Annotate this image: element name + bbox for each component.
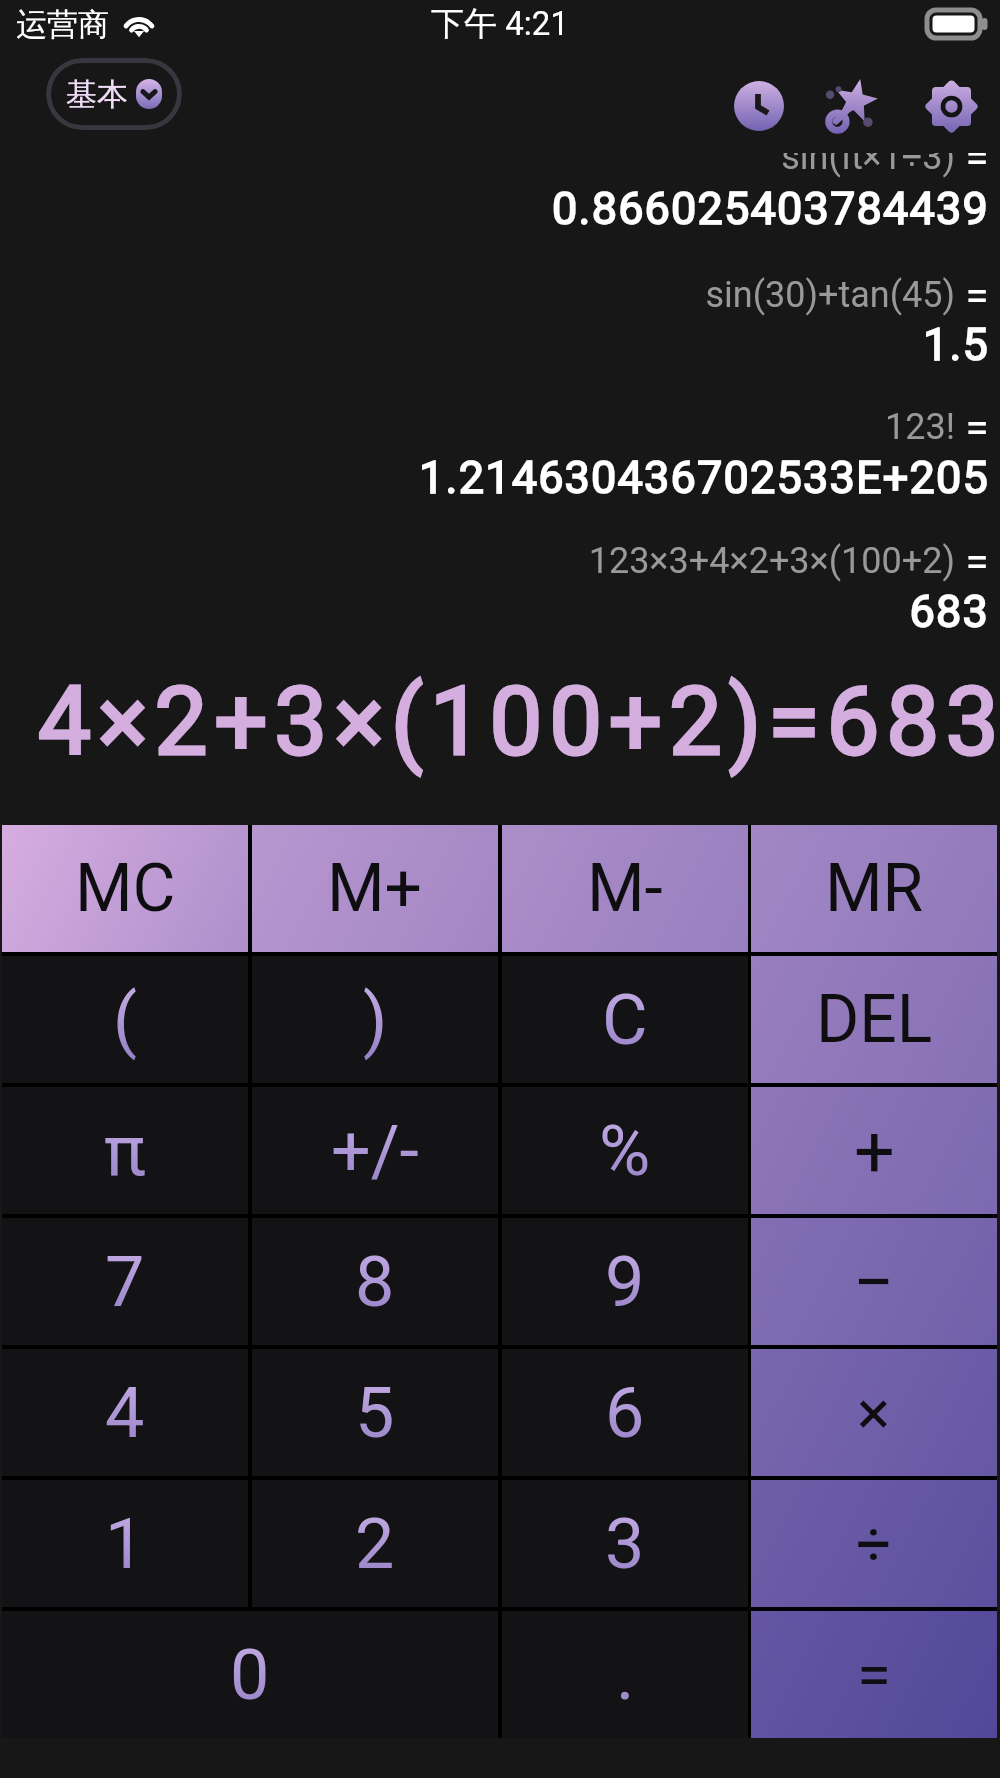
staticText: M+ <box>327 850 423 927</box>
staticText: 运营商 <box>16 5 109 44</box>
staticText: . <box>616 1634 635 1716</box>
staticText: 基本 <box>66 75 128 114</box>
staticText: 0.866025403784439 <box>552 182 989 235</box>
button[interactable]: 9 <box>502 1218 748 1345</box>
button[interactable]: × <box>751 1349 997 1476</box>
staticText: − <box>853 1240 895 1324</box>
button[interactable]: − <box>751 1218 997 1345</box>
staticText: C <box>602 979 648 1061</box>
button[interactable]: M- <box>502 825 748 952</box>
button[interactable]: C <box>502 956 748 1083</box>
staticText: 123×3+4×2+3×(100+2) <box>588 540 955 582</box>
staticText: = <box>955 537 989 586</box>
staticText: 6 <box>605 1372 645 1454</box>
button[interactable]: 5 <box>252 1349 498 1476</box>
staticText: + <box>854 1109 895 1193</box>
button[interactable]: = <box>751 1611 997 1738</box>
button[interactable]: 3 <box>502 1480 748 1607</box>
staticText: sin(π×1÷3) <box>781 153 955 178</box>
staticText: MC <box>75 850 176 927</box>
button[interactable]: ÷ <box>751 1480 997 1607</box>
staticText: 0 <box>230 1634 270 1716</box>
staticText: ( <box>113 979 137 1061</box>
button[interactable]: 7 <box>2 1218 248 1345</box>
staticText: 1.5 <box>922 318 989 371</box>
button[interactable]: MC <box>2 825 248 952</box>
button[interactable]: 0 <box>2 1611 498 1738</box>
button[interactable]: 1 <box>2 1480 248 1607</box>
button[interactable]: ) <box>252 956 498 1083</box>
staticText: 4 <box>105 1372 145 1454</box>
staticText: × <box>857 1376 891 1449</box>
staticText: 3 <box>605 1503 645 1585</box>
button[interactable]: ( <box>2 956 248 1083</box>
staticText: = <box>955 403 989 452</box>
staticText: +/- <box>331 1110 419 1192</box>
staticText: 1.214630436702533E+205 <box>419 451 989 504</box>
button[interactable]: + <box>751 1087 997 1214</box>
button[interactable]: History <box>726 73 792 139</box>
button[interactable]: Settings <box>916 71 987 142</box>
button[interactable]: Scientific tools <box>814 70 886 142</box>
button[interactable]: MR <box>751 825 997 952</box>
staticText: 4×2+3×(100+2)=683 <box>38 667 1000 777</box>
staticText: 9 <box>605 1241 645 1323</box>
staticText: = <box>857 1638 892 1711</box>
staticText: % <box>599 1110 651 1192</box>
staticText: ) <box>363 979 388 1061</box>
button[interactable]: % <box>502 1087 748 1214</box>
staticText: ÷ <box>856 1507 892 1580</box>
staticText: 683 <box>909 585 989 638</box>
staticText: 1 <box>105 1503 145 1585</box>
staticText: = <box>955 271 989 320</box>
button[interactable]: 8 <box>252 1218 498 1345</box>
staticText: M- <box>587 850 663 927</box>
button[interactable]: . <box>502 1611 748 1738</box>
staticText: 123! <box>885 406 955 448</box>
button[interactable]: 基本 <box>46 58 182 130</box>
staticText: 2 <box>355 1503 395 1585</box>
staticText: 下午 4:21 <box>431 3 569 45</box>
button[interactable]: DEL <box>751 956 997 1083</box>
staticText: π <box>104 1110 146 1192</box>
button[interactable]: 2 <box>252 1480 498 1607</box>
staticText: MR <box>825 850 924 927</box>
staticText: 5 <box>355 1372 395 1454</box>
button[interactable]: 4 <box>2 1349 248 1476</box>
button[interactable]: M+ <box>252 825 498 952</box>
button[interactable]: π <box>2 1087 248 1214</box>
staticText: 7 <box>105 1241 145 1323</box>
button[interactable]: +/- <box>252 1087 498 1214</box>
staticText: sin(30)+tan(45) <box>705 274 955 316</box>
staticText: 8 <box>355 1241 395 1323</box>
staticText: = <box>955 153 989 182</box>
button[interactable]: 6 <box>502 1349 748 1476</box>
staticText: DEL <box>816 981 933 1058</box>
